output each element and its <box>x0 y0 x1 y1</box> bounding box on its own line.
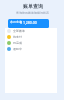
button[interactable]: 退款中 <box>5 46 57 52</box>
staticText: ¥ 1,280.00 <box>20 20 37 25</box>
staticText: 全部账单 <box>13 29 25 33</box>
staticText: 待支付 <box>13 35 22 39</box>
button[interactable]: 本月支出 <box>8 19 49 28</box>
button[interactable]: 全部账单 <box>5 28 57 34</box>
staticText: 已完成 <box>13 41 22 45</box>
button[interactable]: 已完成 <box>5 40 57 46</box>
staticText: 退款中 <box>13 47 22 51</box>
staticText: 账单查询 <box>23 3 43 9</box>
staticText: 查询您的账单明细与状态 <box>16 11 49 14</box>
staticText: 本月支出 <box>10 20 22 24</box>
button[interactable]: 待支付 <box>5 34 57 40</box>
